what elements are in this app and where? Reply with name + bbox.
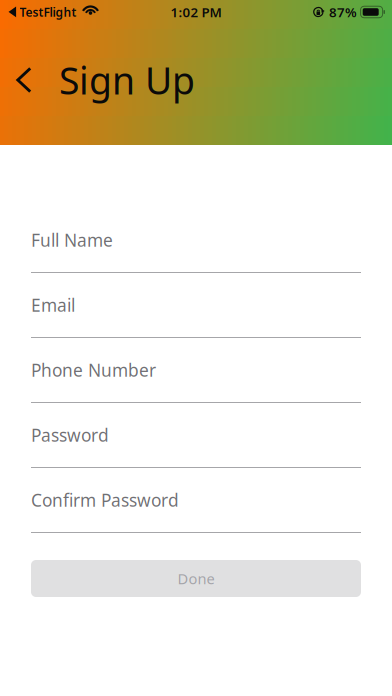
staticText: 1:02 PM bbox=[170, 3, 221, 21]
button[interactable]: Full Name bbox=[31, 208, 361, 273]
button[interactable]: Email bbox=[31, 273, 361, 338]
staticText: Confirm Password bbox=[31, 488, 179, 511]
button[interactable]: Confirm Password bbox=[31, 468, 361, 533]
staticText: Email bbox=[31, 293, 75, 316]
button[interactable]: Password bbox=[31, 403, 361, 468]
staticText: Done bbox=[177, 569, 214, 588]
staticText: Sign Up bbox=[59, 55, 195, 105]
staticText: TestFlight bbox=[20, 4, 77, 20]
button[interactable]: Phone Number bbox=[31, 338, 361, 403]
staticText: 87% bbox=[329, 3, 357, 21]
button[interactable]: Done bbox=[31, 560, 361, 597]
staticText: Password bbox=[31, 423, 109, 446]
staticText: Full Name bbox=[31, 228, 113, 251]
button[interactable]: Back bbox=[9, 58, 39, 102]
staticText: Phone Number bbox=[31, 358, 156, 381]
